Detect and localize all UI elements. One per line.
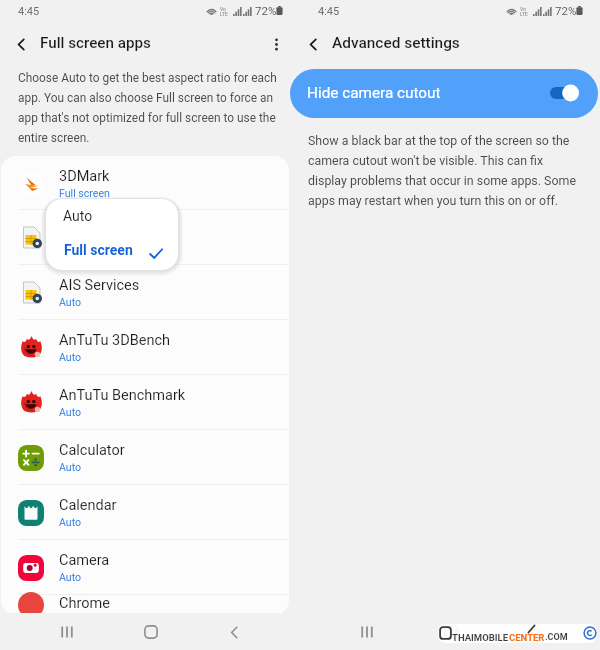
button[interactable]: Home <box>436 622 465 642</box>
button[interactable]: Recent apps <box>52 622 81 642</box>
button[interactable]: Recent apps <box>352 622 381 642</box>
staticText: Show a black bar at the top of the scree… <box>308 133 583 208</box>
staticText: 72% <box>255 4 277 17</box>
staticText: AnTuTu Benchmark <box>59 387 186 404</box>
staticText: Full screen <box>59 187 110 199</box>
button[interactable]: Back <box>520 622 549 642</box>
staticText: Auto <box>63 208 93 224</box>
staticText: Chrome <box>59 595 110 612</box>
button[interactable]: More options <box>263 31 289 57</box>
staticText: 3DMark <box>59 168 110 185</box>
staticText: Auto <box>59 406 82 418</box>
staticText: AIS Services <box>59 277 140 294</box>
staticText: Choose Auto to get the best aspect ratio… <box>18 71 283 145</box>
staticText: 72% <box>555 4 577 17</box>
staticText: Full screen apps <box>40 34 151 52</box>
staticText: Vo <box>520 6 526 12</box>
staticText: Calculator <box>59 442 125 459</box>
button[interactable]: Calendar <box>1 485 289 540</box>
staticText: 4:45 <box>318 5 340 18</box>
staticText: Auto <box>59 571 82 583</box>
button[interactable]: Full screen <box>46 235 178 270</box>
button[interactable]: Navigate up <box>9 32 33 56</box>
staticText: Auto <box>59 296 82 308</box>
button[interactable]: AIS eSIM <box>1 210 289 265</box>
staticText: Auto <box>59 516 82 528</box>
staticText: Auto <box>59 461 82 473</box>
staticText: Calendar <box>59 497 117 514</box>
staticText: Advanced settings <box>332 34 460 52</box>
button[interactable]: AIS Services <box>1 265 289 320</box>
staticText: Auto <box>59 351 82 363</box>
staticText: Vo <box>220 6 226 12</box>
button[interactable]: Camera <box>1 540 289 595</box>
staticText: Auto <box>59 241 82 253</box>
staticText: LTE <box>220 11 228 17</box>
staticText: Full screen <box>64 242 133 258</box>
staticText: CENTER <box>509 632 545 643</box>
staticText: Camera <box>59 552 110 569</box>
button[interactable]: Auto <box>46 199 178 235</box>
button[interactable]: Chrome <box>1 595 289 615</box>
button[interactable]: AnTuTu 3DBench <box>1 320 289 375</box>
staticText: LTE <box>520 11 528 17</box>
button[interactable]: Home <box>136 622 165 642</box>
staticText: THAIMOBILE <box>452 632 509 643</box>
staticText: Hide camera cutout <box>307 84 441 102</box>
staticText: AnTuTu 3DBench <box>59 332 170 349</box>
button[interactable]: Hide camera cutout <box>290 69 598 118</box>
staticText: .COM <box>545 632 568 643</box>
button[interactable]: 3DMark <box>1 156 289 210</box>
staticText: 4:45 <box>18 5 40 18</box>
button[interactable]: Calculator <box>1 430 289 485</box>
button[interactable]: Navigate up <box>301 32 325 56</box>
button[interactable]: Back <box>220 622 249 642</box>
button[interactable]: AnTuTu Benchmark <box>1 375 289 430</box>
